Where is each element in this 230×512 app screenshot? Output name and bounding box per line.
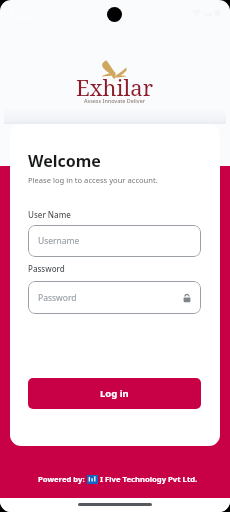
staticText: User Name	[28, 209, 71, 220]
staticText: Welcome	[28, 150, 101, 172]
button[interactable]: Log in	[28, 378, 201, 409]
staticText: Powered by:	[38, 474, 87, 484]
staticText: Password	[38, 292, 77, 304]
staticText: Please log in to access your account.	[28, 175, 158, 185]
other: Show password	[182, 293, 192, 303]
staticText: Assess Innovate Deliver	[84, 97, 146, 104]
staticText: Password	[28, 263, 65, 274]
staticText: Exhilar	[76, 72, 154, 102]
button[interactable]: Username	[28, 225, 201, 257]
staticText: Username	[38, 235, 80, 247]
staticText: Log in	[100, 387, 129, 400]
staticText: I Five Technology Pvt Ltd.	[98, 474, 198, 484]
button[interactable]: Password	[28, 281, 201, 314]
